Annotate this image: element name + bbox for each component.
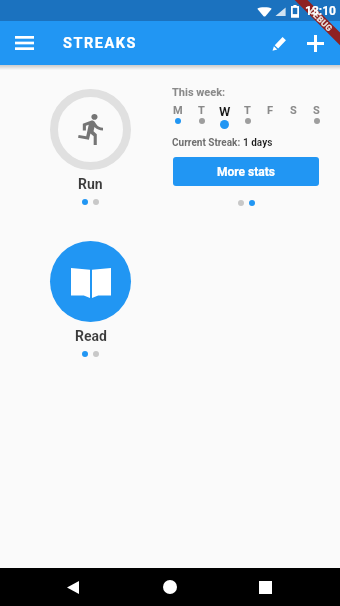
staticText: S [290,104,297,117]
staticText: F [267,104,274,117]
staticText: More stats [217,165,275,179]
staticText: 1 days [243,137,273,149]
staticText: Run [78,176,103,192]
staticText: T [198,104,205,117]
button[interactable]: Open navigation drawer [9,28,39,58]
staticText: DEBUG [307,6,335,34]
button[interactable]: Add [297,25,333,61]
staticText: W [219,104,231,119]
button[interactable]: Run [50,89,131,170]
staticText: This week: [172,86,226,99]
staticText: Read [75,328,107,344]
button[interactable]: Home [155,572,185,602]
button[interactable]: Recents [250,572,280,602]
staticText: 13:10 [305,4,336,18]
staticText: M [173,104,183,117]
button[interactable]: More stats [173,157,319,186]
staticText: T [244,104,251,117]
staticText: Current Streak: [172,137,243,149]
button[interactable]: Back [58,572,88,602]
staticText: S [313,104,320,117]
staticText: STREAKS [63,35,138,52]
button[interactable]: Edit [261,25,297,61]
button[interactable]: Read [50,241,131,322]
